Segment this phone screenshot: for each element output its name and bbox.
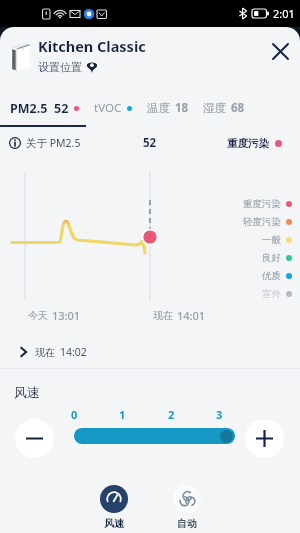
staticText: PM2.5 [10, 100, 48, 117]
staticText: 一般 [262, 234, 281, 246]
staticText: 今天 [28, 309, 48, 322]
staticText: tVOC [94, 100, 122, 116]
button[interactable]: 湿度 [203, 98, 245, 118]
staticText: 14:01 [177, 308, 206, 323]
button[interactable]: 温度 [147, 98, 189, 118]
staticText: 3 [216, 407, 223, 422]
button[interactable]: Close [264, 35, 296, 67]
staticText: 2:01 [273, 6, 295, 21]
staticText: 室外 [262, 288, 281, 300]
staticText: 2 [168, 407, 175, 422]
staticText: 关于 PM2.5 [26, 136, 81, 150]
button[interactable]: 关于 PM2.5 [9, 133, 81, 153]
staticText: 温度 [147, 101, 170, 115]
staticText: 重度污染 [243, 198, 281, 210]
staticText: 良好 [262, 252, 281, 264]
button[interactable]: PM2.5 [10, 98, 79, 118]
staticText: Kitchen Classic [38, 36, 146, 56]
staticText: 1 [119, 407, 126, 422]
staticText: 0 [71, 407, 78, 422]
button[interactable]: 自动 [173, 485, 201, 530]
staticText: 13:01 [52, 308, 81, 323]
button[interactable]: 风速 [100, 485, 128, 530]
staticText: 重度污染 [227, 137, 269, 150]
staticText: 68 [231, 100, 245, 116]
staticText: 现在 [153, 309, 173, 322]
staticText: 风速 [14, 384, 40, 400]
button[interactable]: Decrease fan speed [15, 419, 54, 458]
staticText: 轻度污染 [243, 216, 281, 228]
staticText: 湿度 [203, 101, 226, 115]
button[interactable] [74, 428, 235, 444]
staticText: 52 [143, 135, 157, 151]
button[interactable]: Increase fan speed [245, 419, 284, 458]
staticText: 自动 [177, 517, 197, 530]
button[interactable]: 现在 [19, 341, 300, 363]
staticText: 优质 [262, 270, 281, 282]
button[interactable]: tVOC [94, 98, 132, 118]
staticText: 风速 [104, 517, 124, 530]
staticText: 14:02 [60, 345, 87, 359]
staticText: 52 [54, 100, 69, 117]
staticText: 现在 [35, 346, 55, 359]
staticText: 设置位置 [38, 60, 82, 74]
staticText: 18 [175, 100, 189, 116]
